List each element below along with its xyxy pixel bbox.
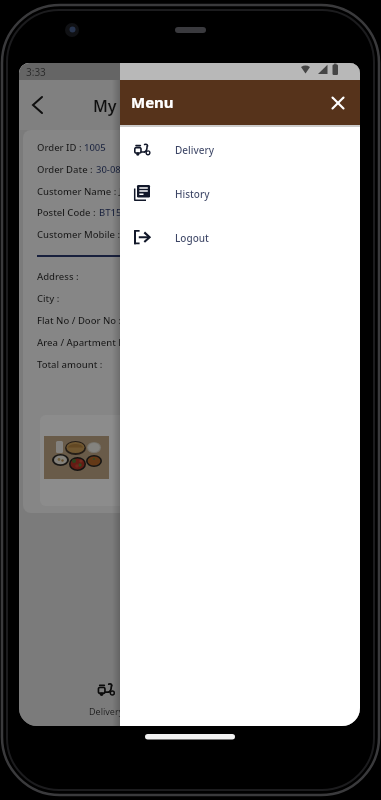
staticText: John (119, 185, 140, 198)
staticText: Customer Name : (37, 185, 119, 198)
button[interactable]: Logout (120, 215, 360, 259)
staticText: Logout (175, 231, 209, 245)
staticText: Total amount : (37, 358, 105, 371)
staticText: Address : (37, 270, 82, 283)
staticText: My Order Details (93, 95, 225, 117)
staticText: Order ID : (37, 141, 84, 154)
button[interactable] (322, 87, 354, 119)
staticText: History (175, 187, 210, 201)
staticText: Order Date : (37, 163, 96, 176)
staticText: Delivery (175, 143, 214, 157)
staticText: 1005 (84, 141, 106, 154)
staticText: 30-08-2021 (96, 163, 146, 176)
staticText: Menu (131, 92, 174, 112)
staticText: 3:33 (26, 65, 46, 79)
staticText: BT15 6TT (99, 206, 141, 219)
staticText: Customer Mobile : (37, 228, 123, 241)
staticText: Area / Apartment Name : (37, 336, 154, 349)
staticText: Postel Code : (37, 206, 99, 219)
button[interactable] (23, 90, 53, 120)
button[interactable]: Delivery (46, 670, 166, 726)
staticText: Flat No / Door No : (37, 314, 124, 327)
button[interactable]: History (120, 171, 360, 215)
staticText: Delivery (89, 705, 124, 717)
button[interactable]: Delivery (120, 127, 360, 171)
staticText: 0771 (123, 228, 145, 241)
staticText: City : (37, 292, 62, 305)
